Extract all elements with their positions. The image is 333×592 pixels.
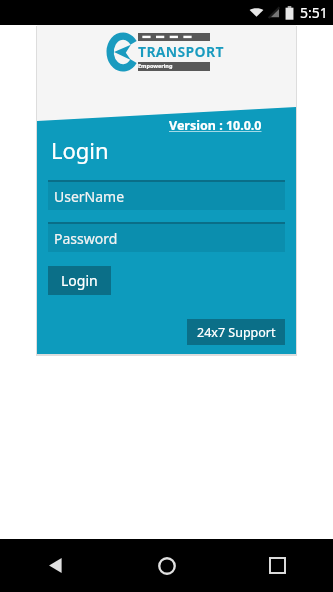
staticText: TRANSPORT (138, 42, 224, 61)
button[interactable]: UserName (48, 180, 285, 210)
staticText: Version : 10.0.0 (169, 117, 262, 134)
staticText: Login (61, 271, 98, 290)
button[interactable]: Recent apps (222, 539, 333, 592)
button[interactable]: Password (48, 222, 285, 252)
staticText: UserName (54, 187, 125, 206)
button[interactable]: 24x7 Support (187, 319, 285, 345)
button[interactable]: Login (48, 266, 111, 295)
staticText: Empowering Transportation (138, 62, 210, 71)
staticText: 5:51 (300, 3, 328, 22)
staticText: Login (51, 135, 109, 165)
button[interactable]: Back (0, 539, 111, 592)
staticText: Password (54, 229, 118, 248)
staticText: 24x7 Support (197, 324, 276, 341)
button[interactable]: Home (111, 539, 222, 592)
